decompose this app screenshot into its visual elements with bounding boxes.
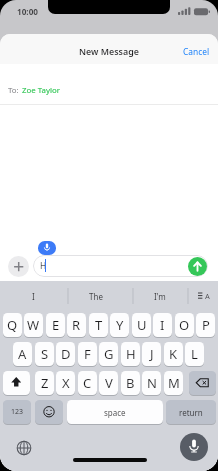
button[interactable] xyxy=(180,433,208,461)
staticText: K xyxy=(169,345,178,363)
button[interactable]: Z xyxy=(35,371,54,395)
button[interactable]: K xyxy=(164,342,183,366)
button[interactable]: R xyxy=(67,313,86,337)
button[interactable] xyxy=(8,256,29,277)
button[interactable]: I xyxy=(153,313,172,337)
staticText: Zoe Taylor xyxy=(22,85,61,96)
staticText: W xyxy=(27,316,40,334)
staticText: A xyxy=(18,345,27,363)
button[interactable] xyxy=(35,400,63,424)
staticText: V xyxy=(105,374,113,392)
button[interactable]: Cancel xyxy=(178,44,214,58)
staticText: I'm xyxy=(154,291,166,302)
staticText: M xyxy=(168,374,180,392)
button[interactable]: A xyxy=(13,342,32,366)
button[interactable]: The xyxy=(73,289,119,303)
button[interactable]: space xyxy=(67,400,163,424)
staticText: 123 xyxy=(11,407,24,417)
staticText: I xyxy=(32,291,35,302)
staticText: G xyxy=(104,345,114,363)
button[interactable]: F xyxy=(78,342,97,366)
button[interactable]: B xyxy=(121,371,140,395)
button[interactable] xyxy=(189,371,216,395)
button[interactable]: D xyxy=(56,342,75,366)
button[interactable]: C xyxy=(78,371,97,395)
button[interactable]: I xyxy=(10,289,56,303)
staticText: New Message xyxy=(79,45,139,57)
button[interactable]: Q xyxy=(3,313,22,337)
button[interactable]: H xyxy=(33,255,208,277)
button[interactable]: M xyxy=(164,371,183,395)
staticText: return xyxy=(179,407,203,418)
button[interactable] xyxy=(188,257,207,276)
staticText: A xyxy=(205,291,210,301)
button[interactable] xyxy=(3,371,30,395)
staticText: P xyxy=(202,316,210,334)
staticText: L xyxy=(191,345,198,363)
staticText: U xyxy=(137,316,147,334)
button[interactable]: 123 xyxy=(3,400,31,424)
staticText: C xyxy=(83,374,92,392)
button[interactable]: P xyxy=(196,313,215,337)
button[interactable]: N xyxy=(142,371,161,395)
staticText: Q xyxy=(7,316,18,334)
staticText: Y xyxy=(116,316,124,334)
button[interactable]: E xyxy=(46,313,65,337)
staticText: R xyxy=(72,316,81,334)
staticText: S xyxy=(41,345,49,363)
button[interactable]: return xyxy=(166,400,216,424)
button[interactable]: I'm xyxy=(137,289,183,303)
staticText: Z xyxy=(41,374,49,392)
staticText: T xyxy=(95,316,103,334)
button[interactable]: To: xyxy=(0,64,218,105)
staticText: Cancel xyxy=(183,46,210,57)
staticText: H xyxy=(126,345,136,363)
staticText: 10:00 xyxy=(17,6,39,17)
staticText: E xyxy=(52,316,60,334)
button[interactable]: W xyxy=(24,313,43,337)
button[interactable]: S xyxy=(35,342,54,366)
button[interactable] xyxy=(10,434,38,462)
staticText: D xyxy=(61,345,71,363)
button[interactable]: L xyxy=(185,342,204,366)
staticText: N xyxy=(147,374,157,392)
button[interactable]: U xyxy=(132,313,151,337)
button[interactable]: J xyxy=(142,342,161,366)
staticText: O xyxy=(179,316,190,334)
staticText: I xyxy=(160,316,165,334)
button[interactable]: Y xyxy=(110,313,129,337)
button[interactable]: X xyxy=(56,371,75,395)
staticText: space xyxy=(104,407,126,418)
staticText: J xyxy=(150,345,154,363)
button[interactable]: O xyxy=(175,313,194,337)
button[interactable]: H xyxy=(121,342,140,366)
staticText: F xyxy=(84,345,91,363)
staticText: The xyxy=(89,291,103,302)
button[interactable]: G xyxy=(99,342,118,366)
staticText: B xyxy=(126,374,135,392)
staticText: H xyxy=(40,260,47,272)
button[interactable]: V xyxy=(99,371,118,395)
staticText: To: xyxy=(8,85,21,96)
staticText: X xyxy=(62,374,70,392)
button[interactable]: T xyxy=(89,313,108,337)
